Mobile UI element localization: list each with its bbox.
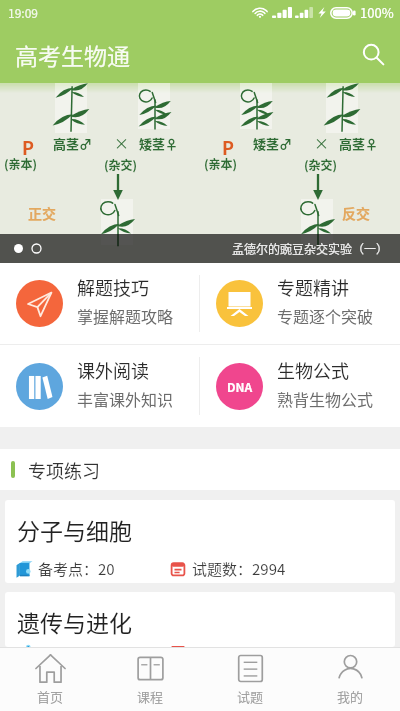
staticText: 矮茎♂	[253, 134, 293, 153]
staticText: 试题数：2994	[192, 558, 286, 580]
staticText: 遗传与进化	[17, 605, 132, 638]
staticText: 100%	[360, 3, 394, 22]
button[interactable]: 解题技巧	[0, 263, 199, 344]
button[interactable]: 课程	[100, 648, 200, 711]
staticText: 分子与细胞	[17, 513, 132, 546]
button[interactable]: DNA	[200, 345, 400, 427]
staticText: (杂交)	[104, 156, 138, 173]
staticText: 专题逐个突破	[277, 304, 374, 327]
button[interactable]: 遗传与进化	[5, 592, 395, 647]
staticText: 高茎♀	[339, 134, 379, 153]
staticText: 试题	[237, 687, 264, 706]
staticText: 专项练习	[28, 457, 100, 483]
staticText: (亲本)	[204, 155, 238, 172]
staticText: 正交	[28, 203, 56, 223]
staticText: (亲本)	[4, 155, 38, 172]
staticText: 高茎♂	[53, 134, 93, 153]
staticText: ×	[114, 132, 130, 154]
staticText: DNA	[227, 378, 253, 395]
staticText: 矮茎♀	[139, 134, 179, 153]
button[interactable]: P	[0, 83, 400, 263]
staticText: 熟背生物公式	[277, 387, 374, 410]
staticText: 解题技巧	[77, 274, 149, 300]
button[interactable]: 分子与细胞	[5, 500, 395, 583]
staticText: 生物公式	[277, 357, 349, 383]
staticText: 孟德尔的豌豆杂交实验（一）	[232, 240, 389, 257]
button[interactable]: 课外阅读	[0, 345, 199, 427]
staticText: 首页	[37, 687, 64, 706]
button[interactable]: 试题	[200, 648, 300, 711]
staticText: 备考点：20	[38, 558, 115, 580]
staticText: 高考生物通	[15, 38, 130, 71]
button[interactable]: Search	[346, 25, 400, 83]
staticText: 我的	[337, 687, 364, 706]
staticText: 19:09	[8, 4, 38, 21]
staticText: 专题精讲	[277, 274, 349, 300]
staticText: P	[222, 134, 235, 160]
staticText: ×	[314, 132, 330, 154]
staticText: 反交	[342, 203, 370, 223]
button[interactable]: 专题精讲	[200, 263, 400, 344]
staticText: 丰富课外知识	[77, 387, 174, 410]
staticText: 课外阅读	[77, 357, 149, 383]
staticText: 课程	[137, 687, 164, 706]
staticText: (杂交)	[304, 156, 338, 173]
staticText: 掌握解题攻略	[77, 304, 174, 327]
button[interactable]: 首页	[0, 648, 100, 711]
staticText: P	[22, 134, 35, 160]
button[interactable]: 我的	[300, 648, 400, 711]
